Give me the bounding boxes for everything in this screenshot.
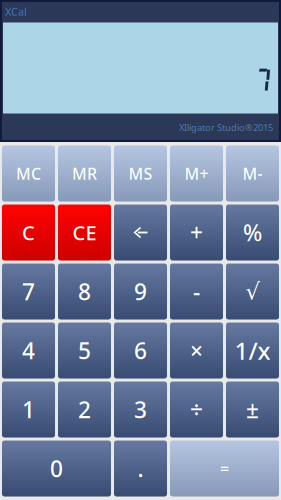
button[interactable]: C: [2, 204, 55, 260]
button[interactable]: 7: [2, 263, 55, 319]
staticText: C: [22, 219, 35, 246]
staticText: MR: [72, 163, 97, 184]
staticText: MC: [16, 163, 41, 184]
staticText: MS: [128, 163, 152, 184]
staticText: 6: [134, 335, 147, 365]
button[interactable]: CE: [58, 204, 111, 260]
staticText: M+: [184, 163, 208, 184]
button[interactable]: 1: [2, 381, 55, 437]
staticText: .: [137, 453, 143, 483]
staticText: 1/x: [234, 335, 270, 366]
button[interactable]: MC: [2, 145, 55, 201]
staticText: XIligator Studio®2015: [179, 121, 273, 134]
staticText: 1: [22, 394, 35, 424]
staticText: 3: [134, 394, 147, 424]
button[interactable]: %: [226, 204, 279, 260]
button[interactable]: .: [114, 440, 167, 496]
button[interactable]: =: [170, 440, 279, 496]
button[interactable]: √: [226, 263, 279, 319]
staticText: 8: [78, 276, 91, 306]
button[interactable]: 4: [2, 322, 55, 378]
button[interactable]: 9: [114, 263, 167, 319]
button[interactable]: ×: [170, 322, 223, 378]
button[interactable]: 0: [2, 440, 111, 496]
staticText: +: [190, 217, 203, 247]
button[interactable]: +: [170, 204, 223, 260]
button[interactable]: M-: [226, 145, 279, 201]
staticText: 5: [78, 335, 91, 365]
staticText: ×: [190, 335, 203, 365]
staticText: 2: [78, 394, 91, 424]
button[interactable]: ÷: [170, 381, 223, 437]
button[interactable]: M+: [170, 145, 223, 201]
button[interactable]: 8: [58, 263, 111, 319]
staticText: %: [243, 217, 262, 247]
button[interactable]: 5: [58, 322, 111, 378]
button[interactable]: 2: [58, 381, 111, 437]
staticText: =: [220, 458, 229, 479]
button[interactable]: 3: [114, 381, 167, 437]
staticText: ±: [246, 394, 259, 424]
button[interactable]: ±: [226, 381, 279, 437]
staticText: √: [245, 279, 259, 304]
button[interactable]: MR: [58, 145, 111, 201]
staticText: -: [193, 276, 200, 306]
staticText: 4: [22, 335, 35, 365]
staticText: 7: [22, 276, 35, 306]
staticText: XCal: [5, 4, 27, 19]
staticText: ÷: [190, 394, 203, 424]
button[interactable]: 6: [114, 322, 167, 378]
button[interactable]: Backspace: [114, 204, 167, 260]
staticText: CE: [72, 219, 96, 246]
button[interactable]: 1/x: [226, 322, 279, 378]
staticText: 0: [50, 453, 63, 483]
staticText: 9: [134, 276, 147, 306]
button[interactable]: -: [170, 263, 223, 319]
staticText: M-: [242, 163, 262, 184]
button[interactable]: MS: [114, 145, 167, 201]
